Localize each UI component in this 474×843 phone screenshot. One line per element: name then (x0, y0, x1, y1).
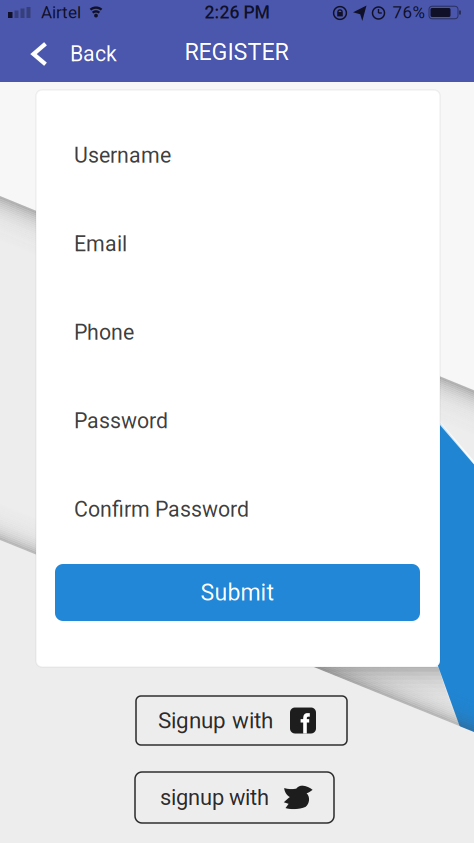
button[interactable]: Username (74, 143, 420, 167)
staticText: signup with (160, 785, 269, 810)
staticText: Confirm Password (74, 497, 249, 522)
staticText: Username (74, 143, 171, 168)
button[interactable]: Back (0, 26, 117, 82)
staticText: Email (74, 231, 127, 256)
staticText: Back (70, 41, 117, 66)
staticText: Password (74, 408, 168, 433)
staticText: 2:26 PM (204, 2, 269, 23)
staticText: Submit (200, 579, 274, 606)
button[interactable]: Confirm Password (74, 497, 420, 521)
button[interactable]: Signup with (136, 696, 347, 745)
button[interactable]: Password (74, 409, 420, 433)
button[interactable]: signup with (135, 772, 334, 823)
button[interactable]: Email (74, 232, 420, 256)
staticText: Signup with (158, 707, 273, 734)
staticText: 76% (392, 2, 425, 22)
button[interactable]: Phone (74, 320, 420, 344)
staticText: Airtel (41, 2, 81, 22)
staticText: REGISTER (184, 38, 288, 66)
button[interactable]: Submit (55, 564, 420, 621)
staticText: Phone (74, 320, 134, 345)
